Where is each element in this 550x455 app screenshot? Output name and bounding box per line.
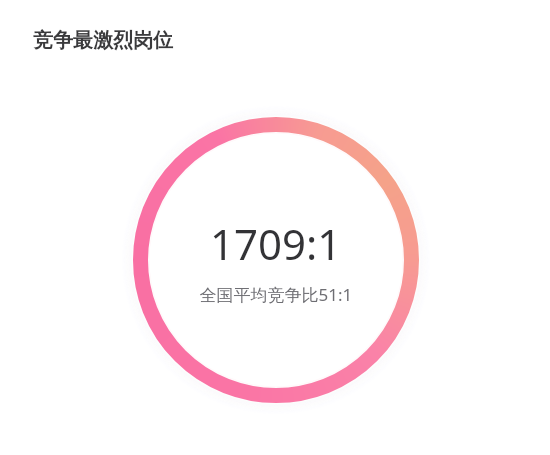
- button[interactable]: 竞争最激烈岗位 1709比1: [0, 0, 550, 455]
